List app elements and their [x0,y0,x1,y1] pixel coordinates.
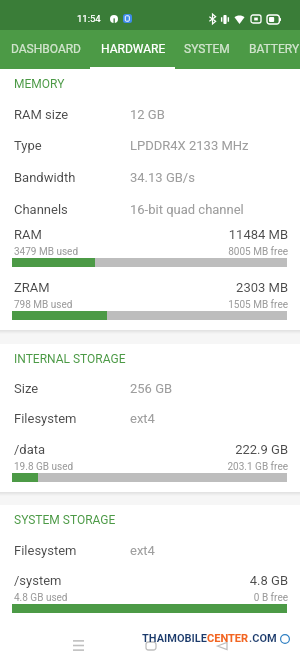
staticText: THAIMOBILE [142,632,207,645]
staticText: 8005 MB free [0,246,288,258]
button[interactable]: Back [205,629,238,662]
button[interactable]: Bandwidth [0,170,300,201]
staticText: /system [14,573,62,588]
button[interactable]: DASHBOARD [1,30,91,69]
staticText: 11:54 [77,13,101,24]
button[interactable]: SYSTEM [175,30,239,69]
staticText: 1505 MB free [0,299,288,311]
button[interactable]: /data [0,442,300,484]
button[interactable]: Home [134,629,167,662]
staticText: 19.8 GB used [14,461,74,473]
button[interactable]: Filesystem [0,411,300,442]
staticText: .COM [249,632,277,645]
staticText: 2303 MB [0,280,288,295]
staticText: Bandwidth [14,170,76,185]
staticText: 4.8 GB used [14,592,68,604]
staticText: HARDWARE [101,42,166,56]
staticText: SYSTEM [184,42,230,56]
button[interactable]: HARDWARE [91,30,175,69]
staticText: ext4 [130,411,155,426]
staticText: SYSTEM STORAGE [14,513,116,527]
staticText: 4.8 GB [0,573,288,588]
staticText: /data [14,442,46,457]
staticText: Filesystem [14,411,77,426]
button[interactable]: Channels [0,202,300,233]
staticText: Size [14,381,39,396]
staticText: Filesystem [14,543,77,558]
staticText: 222.9 GB [0,442,288,457]
staticText: LPDDR4X 2133 MHz [130,138,249,153]
staticText: 203.1 GB free [0,461,288,473]
staticText: ZRAM [14,280,50,295]
staticText: 798 MB used [14,299,73,311]
staticText: RAM size [14,107,69,122]
staticText: 256 GB [130,381,173,396]
staticText: INTERNAL STORAGE [14,352,126,366]
button[interactable]: BATTERY [239,30,300,69]
staticText: DASHBOARD [11,42,81,56]
staticText: MEMORY [14,77,65,91]
staticText: BATTERY [249,42,300,56]
staticText: Channels [14,202,68,217]
staticText: CENTER [207,632,249,645]
button[interactable]: /system [0,573,300,615]
button[interactable]: Filesystem [0,543,300,574]
button[interactable]: Size [0,381,300,412]
staticText: 34.13 GB/s [130,170,195,185]
button[interactable]: RAM size [0,107,300,138]
staticText: 0 B free [0,592,288,604]
staticText: ext4 [130,543,155,558]
staticText: RAM [14,227,42,242]
button[interactable]: ZRAM [0,280,300,322]
staticText: 16-bit quad channel [130,202,244,217]
staticText: 11484 MB [0,227,288,242]
button[interactable]: Recent apps [62,629,95,662]
staticText: 12 GB [130,107,165,122]
staticText: 3479 MB used [14,246,79,258]
staticText: Type [14,138,42,153]
button[interactable]: Type [0,138,300,169]
button[interactable]: RAM [0,227,300,269]
